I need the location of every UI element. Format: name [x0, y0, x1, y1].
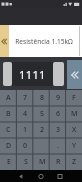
button[interactable]: E [0, 154, 17, 170]
button[interactable]: 9 [50, 90, 66, 106]
staticText: 8 [40, 93, 45, 103]
staticText: M [39, 157, 46, 167]
staticText: A [6, 93, 11, 103]
button[interactable]: D [0, 138, 17, 154]
staticText: 1111 [19, 67, 46, 82]
button[interactable]: 3 [50, 122, 66, 138]
staticText: . [57, 141, 59, 151]
button[interactable]: B [0, 106, 17, 122]
button[interactable]: 4 [17, 106, 34, 122]
button[interactable]: Backspace [67, 60, 82, 89]
button[interactable]: Z [66, 154, 82, 170]
button[interactable]: 1 [17, 122, 34, 138]
staticText: R [56, 157, 61, 167]
button[interactable]: Previous [0, 25, 9, 57]
button[interactable]: 8 [34, 90, 50, 106]
button[interactable]: A [0, 90, 17, 106]
staticText: 4 [23, 109, 28, 119]
staticText: S [24, 157, 28, 167]
button[interactable]: X [66, 122, 82, 138]
staticText: D [6, 141, 12, 151]
button[interactable]: M [34, 154, 50, 170]
staticText: 2 [40, 125, 45, 135]
staticText: Resistência 1.15kΩ [15, 37, 73, 46]
button[interactable]: 2 [34, 122, 50, 138]
button[interactable]: R [50, 154, 66, 170]
button[interactable]: M [66, 106, 82, 122]
button[interactable]: . [50, 138, 66, 154]
staticText: M [71, 109, 78, 119]
button[interactable]: Y [66, 138, 82, 154]
staticText: Y [72, 141, 77, 151]
button[interactable]: 0 [17, 138, 34, 154]
staticText: Z [72, 157, 77, 167]
staticText: 5 [40, 109, 45, 119]
staticText: C [6, 125, 11, 135]
button[interactable]: C [0, 122, 17, 138]
staticText: X [72, 125, 77, 135]
staticText: B [6, 109, 11, 119]
button[interactable]: 5 [34, 106, 50, 122]
button[interactable]: 6 [50, 106, 66, 122]
staticText: 3 [56, 125, 61, 135]
button[interactable] [34, 138, 50, 154]
staticText: 7 [23, 93, 28, 103]
button[interactable]: 7 [17, 90, 34, 106]
staticText: 0 [23, 141, 28, 151]
staticText: F [72, 93, 76, 103]
button[interactable]: S [17, 154, 34, 170]
button[interactable]: F [66, 90, 82, 106]
staticText: 1 [23, 125, 28, 135]
staticText: 9 [56, 93, 61, 103]
staticText: E [7, 157, 11, 167]
staticText: 6 [56, 109, 61, 119]
